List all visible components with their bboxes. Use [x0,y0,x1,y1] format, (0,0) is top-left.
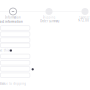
staticText: Back [0,82,5,85]
button[interactable]: Payment [78,16,89,19]
button[interactable]: Information [5,16,21,19]
button[interactable] [0,43,30,48]
staticText: Information [5,16,21,19]
button[interactable] [0,60,30,65]
staticText: Contact information [0,20,23,23]
button[interactable]: Shipping [42,16,55,19]
button[interactable] [0,54,30,59]
staticText: $72.00 [78,19,89,22]
staticText: Continue to shipping [0,82,26,85]
staticText: Save this [0,49,9,52]
button[interactable]: Back [0,82,5,85]
staticText: Shipping [42,16,55,19]
staticText: Payment [78,16,89,19]
staticText: Order summary [40,19,59,23]
button[interactable] [0,73,30,77]
button[interactable]: Continue to shipping [0,82,26,85]
